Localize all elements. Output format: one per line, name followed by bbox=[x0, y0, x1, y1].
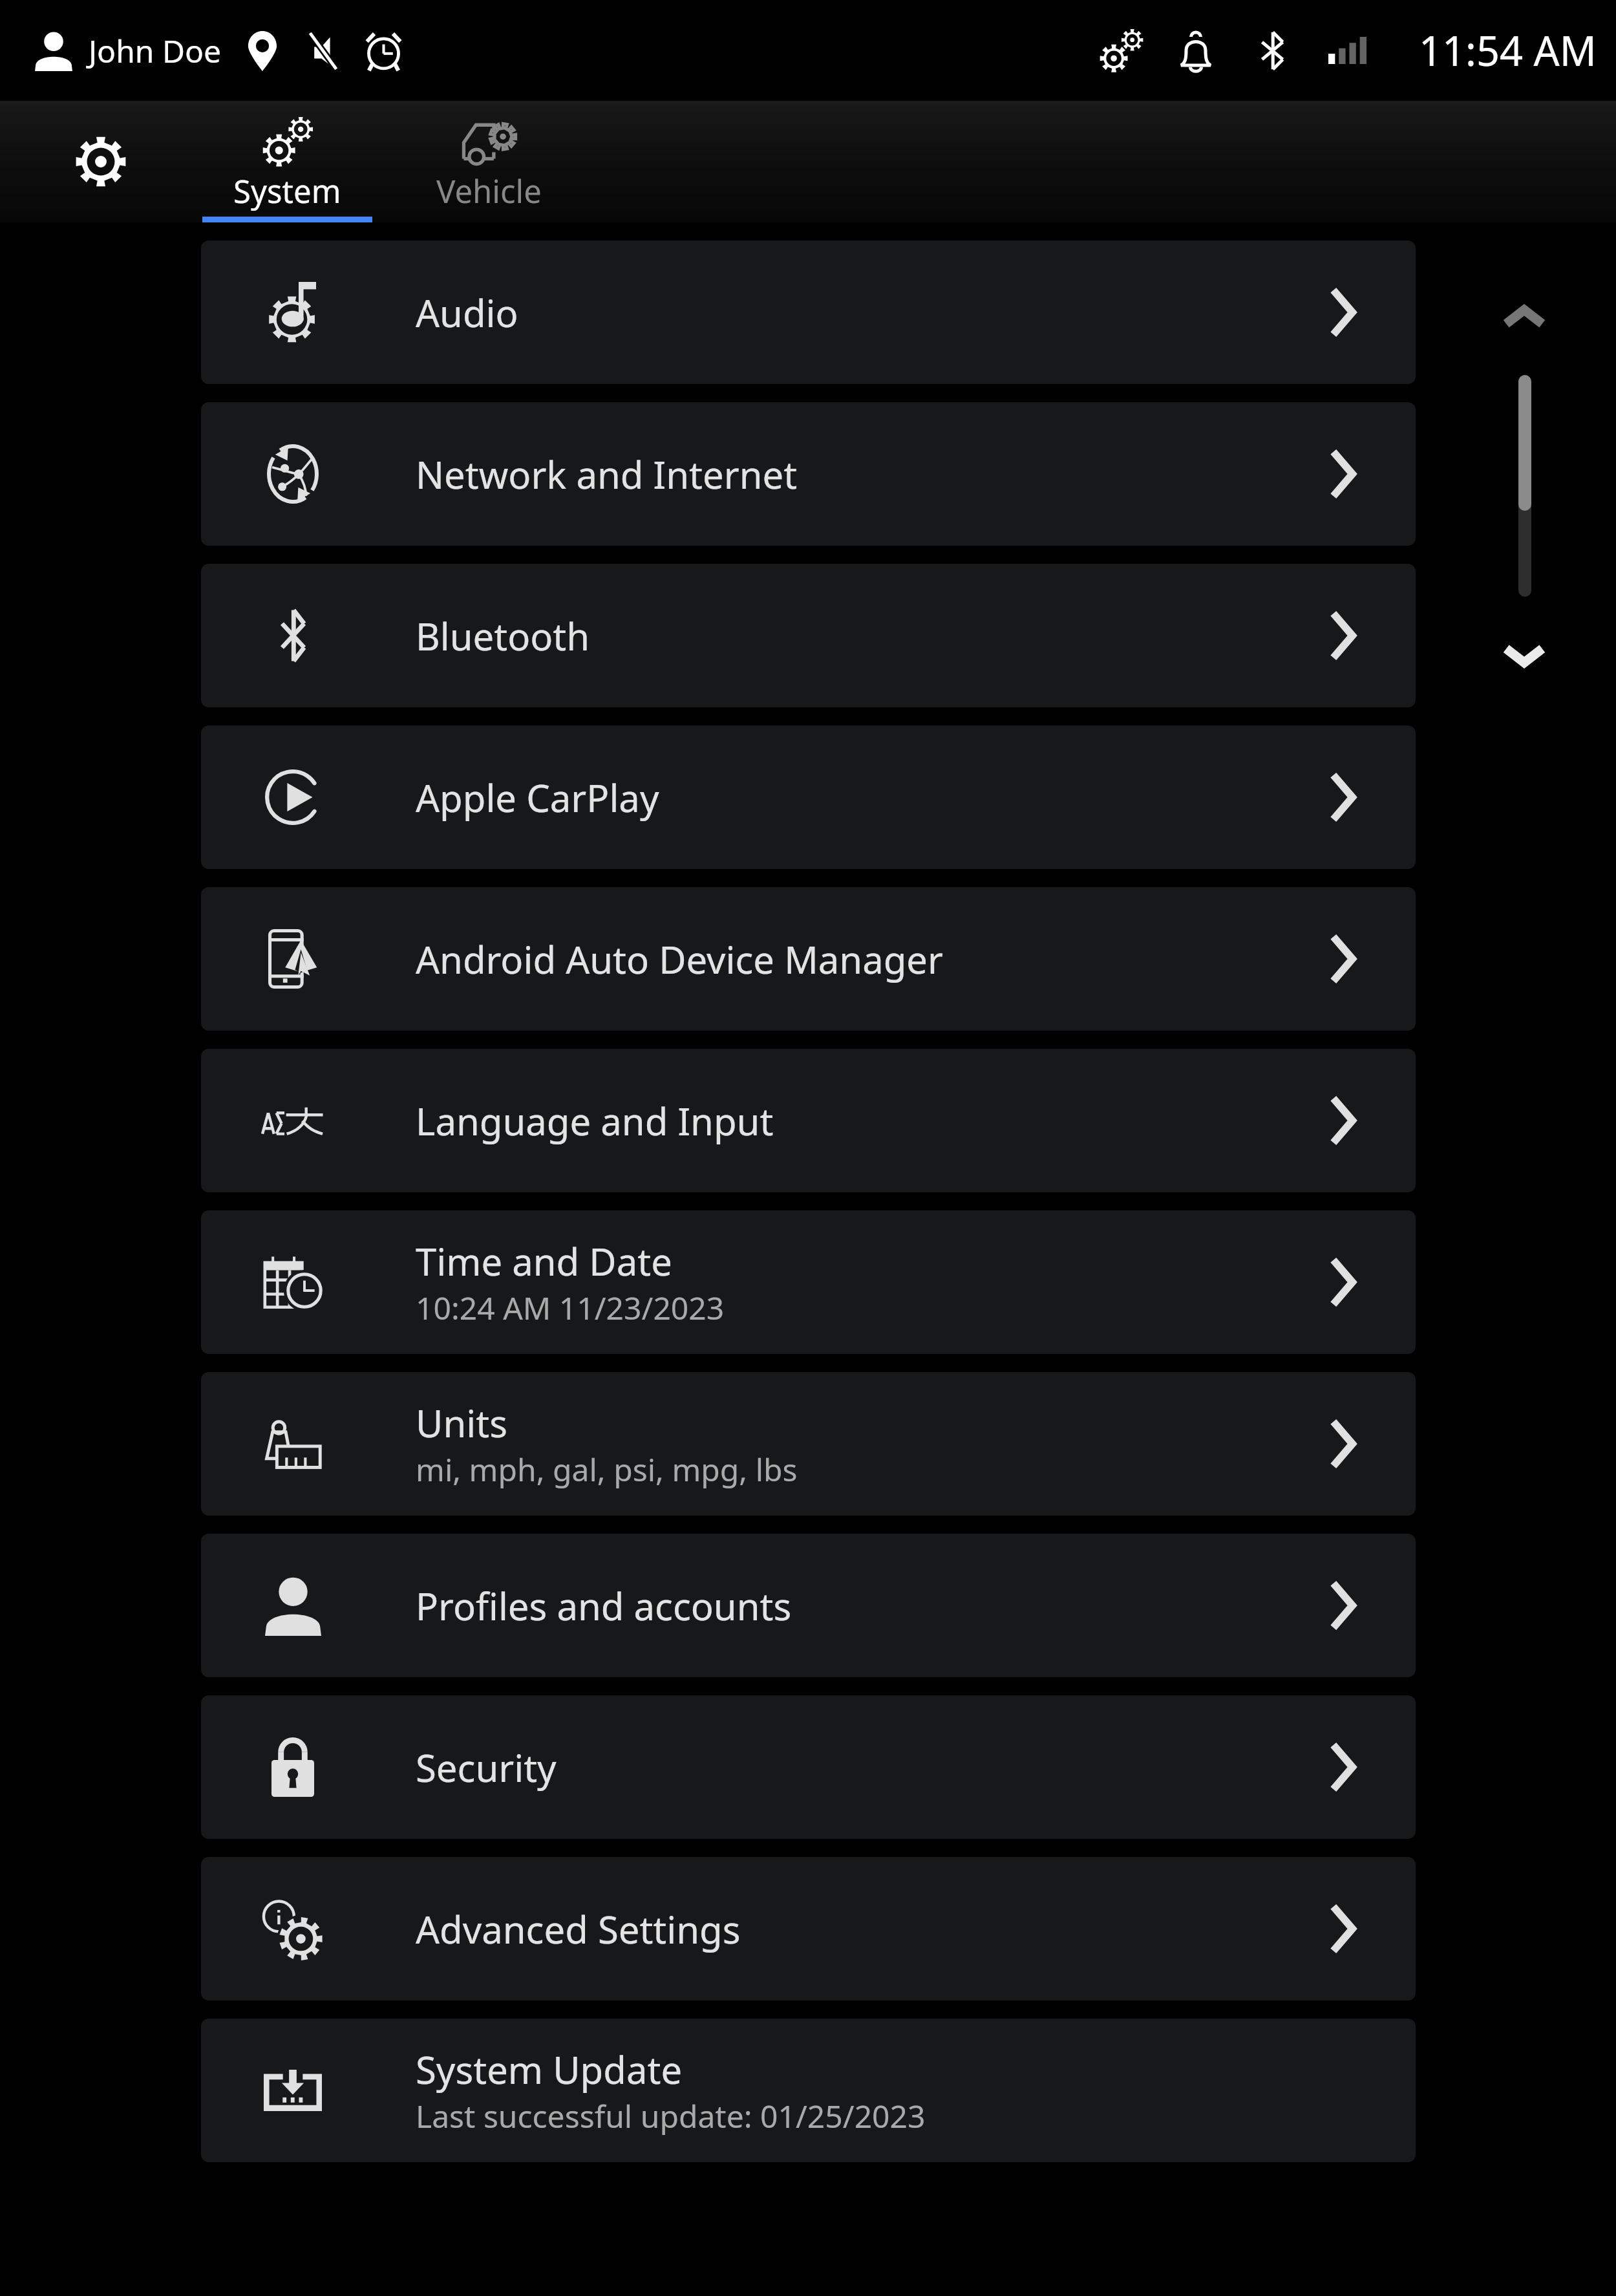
staticText: Apple CarPlay bbox=[416, 772, 659, 823]
staticText: Language and Input bbox=[416, 1095, 774, 1146]
staticText: Units bbox=[416, 1397, 507, 1448]
button[interactable]: Security bbox=[201, 1695, 1416, 1839]
button[interactable]: Audio bbox=[201, 241, 1416, 384]
button[interactable]: Android Auto Device Manager bbox=[201, 887, 1416, 1031]
staticText: Audio bbox=[416, 287, 518, 338]
staticText: Time and Date bbox=[416, 1236, 672, 1287]
staticText: System Update bbox=[416, 2044, 683, 2095]
button[interactable]: Profiles and accounts bbox=[201, 1534, 1416, 1677]
staticText: John Doe bbox=[89, 30, 222, 72]
button[interactable]: Advanced Settings bbox=[201, 1857, 1416, 2001]
button[interactable]: Scroll up bbox=[1493, 286, 1555, 348]
staticText: 11:54 AM bbox=[1419, 23, 1597, 78]
staticText: Last successful update: 01/25/2023 bbox=[416, 2095, 926, 2137]
staticText: Profiles and accounts bbox=[416, 1580, 792, 1631]
button[interactable]: Time and Date bbox=[201, 1210, 1416, 1354]
button[interactable]: System bbox=[202, 101, 372, 222]
staticText: mi, mph, gal, psi, mpg, lbs bbox=[416, 1448, 798, 1490]
button[interactable]: Bluetooth bbox=[201, 564, 1416, 707]
staticText: Advanced Settings bbox=[416, 1904, 741, 1955]
staticText: Vehicle bbox=[436, 169, 542, 213]
button[interactable]: Settings bbox=[65, 125, 137, 198]
button[interactable]: Vehicle bbox=[404, 101, 574, 222]
staticText: 10:24 AM 11/23/2023 bbox=[416, 1287, 725, 1329]
button[interactable]: System Update bbox=[201, 2019, 1416, 2162]
staticText: Android Auto Device Manager bbox=[416, 934, 944, 985]
staticText: System bbox=[233, 169, 341, 213]
button[interactable]: Apple CarPlay bbox=[201, 725, 1416, 869]
button[interactable]: John Doe bbox=[35, 30, 222, 72]
staticText: Network and Internet bbox=[416, 449, 798, 500]
button[interactable]: Language and Input bbox=[201, 1049, 1416, 1192]
button[interactable]: Network and Internet bbox=[201, 402, 1416, 546]
button[interactable]: Scroll down bbox=[1493, 625, 1555, 687]
staticText: Security bbox=[416, 1742, 557, 1793]
button[interactable]: Units bbox=[201, 1372, 1416, 1516]
staticText: Bluetooth bbox=[416, 610, 590, 661]
